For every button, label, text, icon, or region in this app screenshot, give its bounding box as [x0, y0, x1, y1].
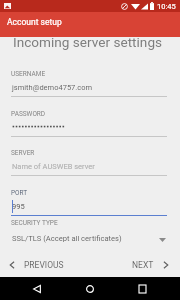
staticText: SECURITY TYPE — [11, 219, 58, 227]
button[interactable]: Recent apps — [128, 277, 157, 300]
staticText: PORT — [11, 189, 28, 197]
staticText: PREVIOUS — [24, 260, 64, 270]
button[interactable]: NEXT — [132, 253, 169, 277]
button[interactable]: SSL/TLS (Accept all certificates) — [0, 232, 180, 246]
button[interactable]: PREVIOUS — [9, 253, 64, 277]
staticText: Incoming server settings — [13, 34, 163, 50]
staticText: SERVER — [11, 149, 35, 157]
staticText: PASSWORD — [11, 110, 46, 118]
staticText: NEXT — [132, 260, 154, 270]
staticText: Name of AUSWEB server — [12, 162, 95, 171]
staticText: SSL/TLS (Accept all certificates) — [12, 234, 122, 243]
staticText: USERNAME — [11, 70, 46, 78]
staticText: 10:45 — [157, 2, 176, 11]
staticText: Account setup — [7, 17, 62, 27]
staticText: jsmith@demo4757.com — [12, 83, 93, 92]
staticText: 995 — [12, 202, 25, 211]
button[interactable]: Back — [22, 277, 51, 300]
button[interactable]: Home — [75, 277, 104, 300]
